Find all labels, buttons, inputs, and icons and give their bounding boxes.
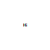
staticText: Hi [23, 22, 27, 28]
